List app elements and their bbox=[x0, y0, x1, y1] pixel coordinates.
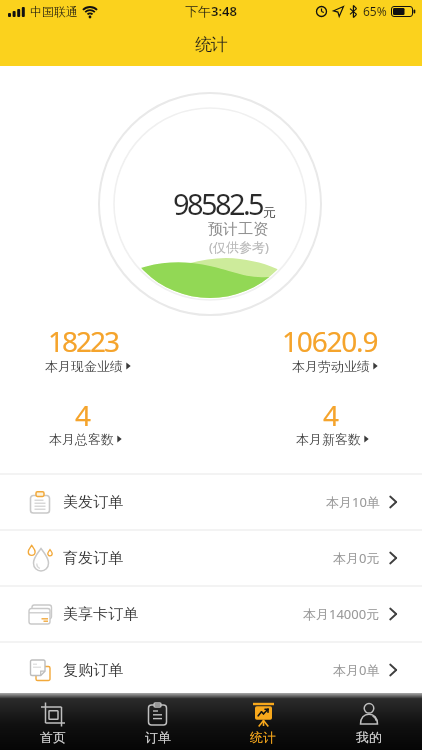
button[interactable]: 本月现金业绩 bbox=[45, 358, 131, 374]
button[interactable]: 本月总客数 bbox=[49, 431, 122, 447]
staticText: 预计工资 bbox=[208, 220, 268, 239]
staticText: 4 bbox=[75, 396, 92, 428]
staticText: 98582.5 bbox=[173, 184, 263, 223]
staticText: 本月新客数 bbox=[296, 431, 361, 447]
staticText: 10620.9 bbox=[282, 322, 378, 354]
staticText: 统计 bbox=[250, 729, 276, 745]
staticText: 订单 bbox=[145, 729, 171, 745]
staticText: 本月总客数 bbox=[49, 431, 114, 447]
button[interactable]: 复购订单 bbox=[0, 642, 422, 698]
staticText: 本月劳动业绩 bbox=[292, 358, 370, 374]
button[interactable]: 本月劳动业绩 bbox=[292, 358, 378, 374]
staticText: 首页 bbox=[40, 729, 66, 745]
button[interactable]: 育发订单 bbox=[0, 530, 422, 586]
staticText: 本月0单 bbox=[333, 661, 380, 679]
staticText: 本月0元 bbox=[333, 549, 380, 567]
button[interactable]: 美发订单 bbox=[0, 474, 422, 530]
button[interactable]: 本月新客数 bbox=[296, 431, 369, 447]
staticText: 65% bbox=[363, 3, 387, 19]
staticText: 18223 bbox=[48, 322, 119, 354]
staticText: 下午3:48 bbox=[185, 2, 237, 20]
button[interactable]: 我的 bbox=[316, 693, 422, 750]
button[interactable]: 订单 bbox=[105, 693, 210, 750]
staticText: 中国联通 bbox=[30, 4, 78, 19]
staticText: 本月现金业绩 bbox=[45, 358, 123, 374]
button[interactable]: 首页 bbox=[0, 693, 105, 750]
staticText: 我的 bbox=[356, 729, 382, 745]
staticText: 育发订单 bbox=[63, 549, 123, 568]
staticText: 本月14000元 bbox=[303, 605, 380, 623]
staticText: 美享卡订单 bbox=[63, 605, 138, 624]
staticText: 复购订单 bbox=[63, 661, 123, 680]
staticText: (仅供参考) bbox=[209, 238, 269, 256]
staticText: 美发订单 bbox=[63, 493, 123, 512]
staticText: 4 bbox=[323, 396, 340, 428]
button[interactable]: 统计 bbox=[210, 693, 316, 750]
button[interactable]: 美享卡订单 bbox=[0, 586, 422, 642]
staticText: 统计 bbox=[196, 34, 227, 55]
staticText: 本月10单 bbox=[326, 493, 380, 511]
staticText: 元 bbox=[263, 204, 276, 220]
